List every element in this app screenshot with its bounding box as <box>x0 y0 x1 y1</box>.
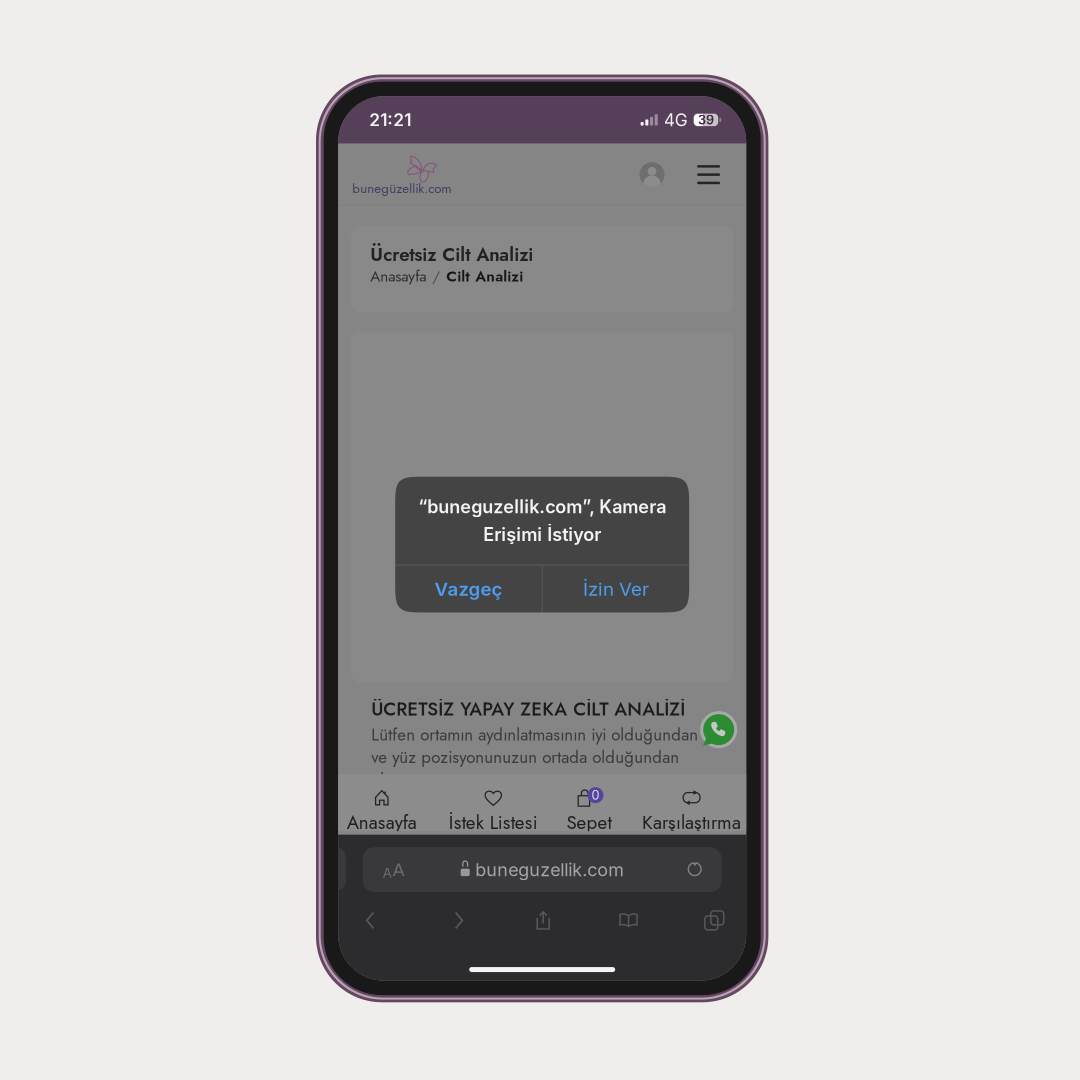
button[interactable]: Back <box>342 898 398 942</box>
button[interactable]: Bookmarks <box>600 898 656 942</box>
staticText: ÜCRETSİZ YAPAY ZEKA CİLT ANALİZİ <box>371 696 685 723</box>
staticText: 21:21 <box>369 109 411 130</box>
staticText: 39 <box>698 112 714 127</box>
staticText: A <box>383 865 392 881</box>
staticText: bunegüzellik.com <box>352 179 451 198</box>
staticText: Ücretsiz Cilt Analizi <box>370 241 533 268</box>
button[interactable]: Vazgeç <box>395 565 542 612</box>
staticText: Cilt Analizi <box>446 265 523 287</box>
staticText: İstek Listesi <box>449 809 538 836</box>
button[interactable]: Anasayfa <box>324 774 440 831</box>
staticText: Lütfen ortamın aydınlatmasının iyi olduğ… <box>371 723 698 747</box>
staticText: 4G <box>664 109 688 130</box>
staticText: Anasayfa <box>347 809 417 836</box>
staticText: ve yüz pozisyonunuzun ortada olduğundan … <box>371 745 679 793</box>
staticText: Sepet <box>566 809 611 836</box>
button[interactable]: WhatsApp <box>697 708 741 752</box>
button[interactable]: Address <box>363 847 722 892</box>
staticText: Vazgeç <box>434 578 502 600</box>
button[interactable]: Account <box>630 152 674 198</box>
staticText: olun. <box>371 767 407 791</box>
staticText: Anasayfa <box>370 265 426 287</box>
button[interactable]: İstek Listesi <box>435 774 551 831</box>
button[interactable]: İzin Ver <box>543 565 689 612</box>
staticText: İzin Ver <box>583 578 649 600</box>
button[interactable]: Tabs <box>686 898 742 942</box>
button[interactable]: Forward <box>431 898 487 942</box>
staticText: Karşılaştırma <box>642 809 741 836</box>
staticText: buneguzellik.com <box>475 859 624 880</box>
button[interactable]: 0 <box>531 774 647 831</box>
button[interactable]: Share <box>515 898 571 942</box>
staticText: “buneguzellik.com”, Kamera <box>418 496 666 518</box>
staticText: Erişimi İstiyor <box>483 524 601 545</box>
staticText: A <box>392 858 405 881</box>
staticText: 0 <box>591 787 599 803</box>
button[interactable]: Menu <box>687 152 731 198</box>
staticText: / <box>432 265 440 287</box>
button[interactable]: Karşılaştırma <box>634 774 750 831</box>
